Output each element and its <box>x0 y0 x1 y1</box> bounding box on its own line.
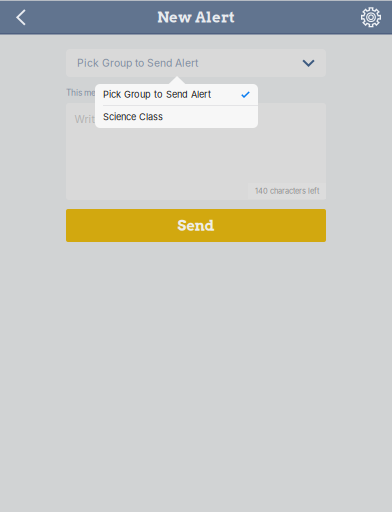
staticText: 140 characters left <box>255 186 319 195</box>
button[interactable]: Back <box>0 1 42 34</box>
staticText: Send <box>177 217 214 234</box>
button[interactable]: Pick Group to Send Alert <box>66 49 326 77</box>
button[interactable]: Send <box>66 209 326 242</box>
staticText: This message will be sent to all group m… <box>66 87 249 98</box>
staticText: Science Class <box>103 111 163 122</box>
staticText: New Alert <box>157 8 235 26</box>
staticText: Pick Group to Send Alert <box>77 57 198 69</box>
button[interactable]: Pick Group to Send Alert <box>95 84 258 105</box>
staticText: Pick Group to Send Alert <box>103 89 211 100</box>
button[interactable]: Settings <box>350 1 392 34</box>
staticText: Write your message here... <box>74 113 205 126</box>
button[interactable]: Science Class <box>95 106 258 128</box>
